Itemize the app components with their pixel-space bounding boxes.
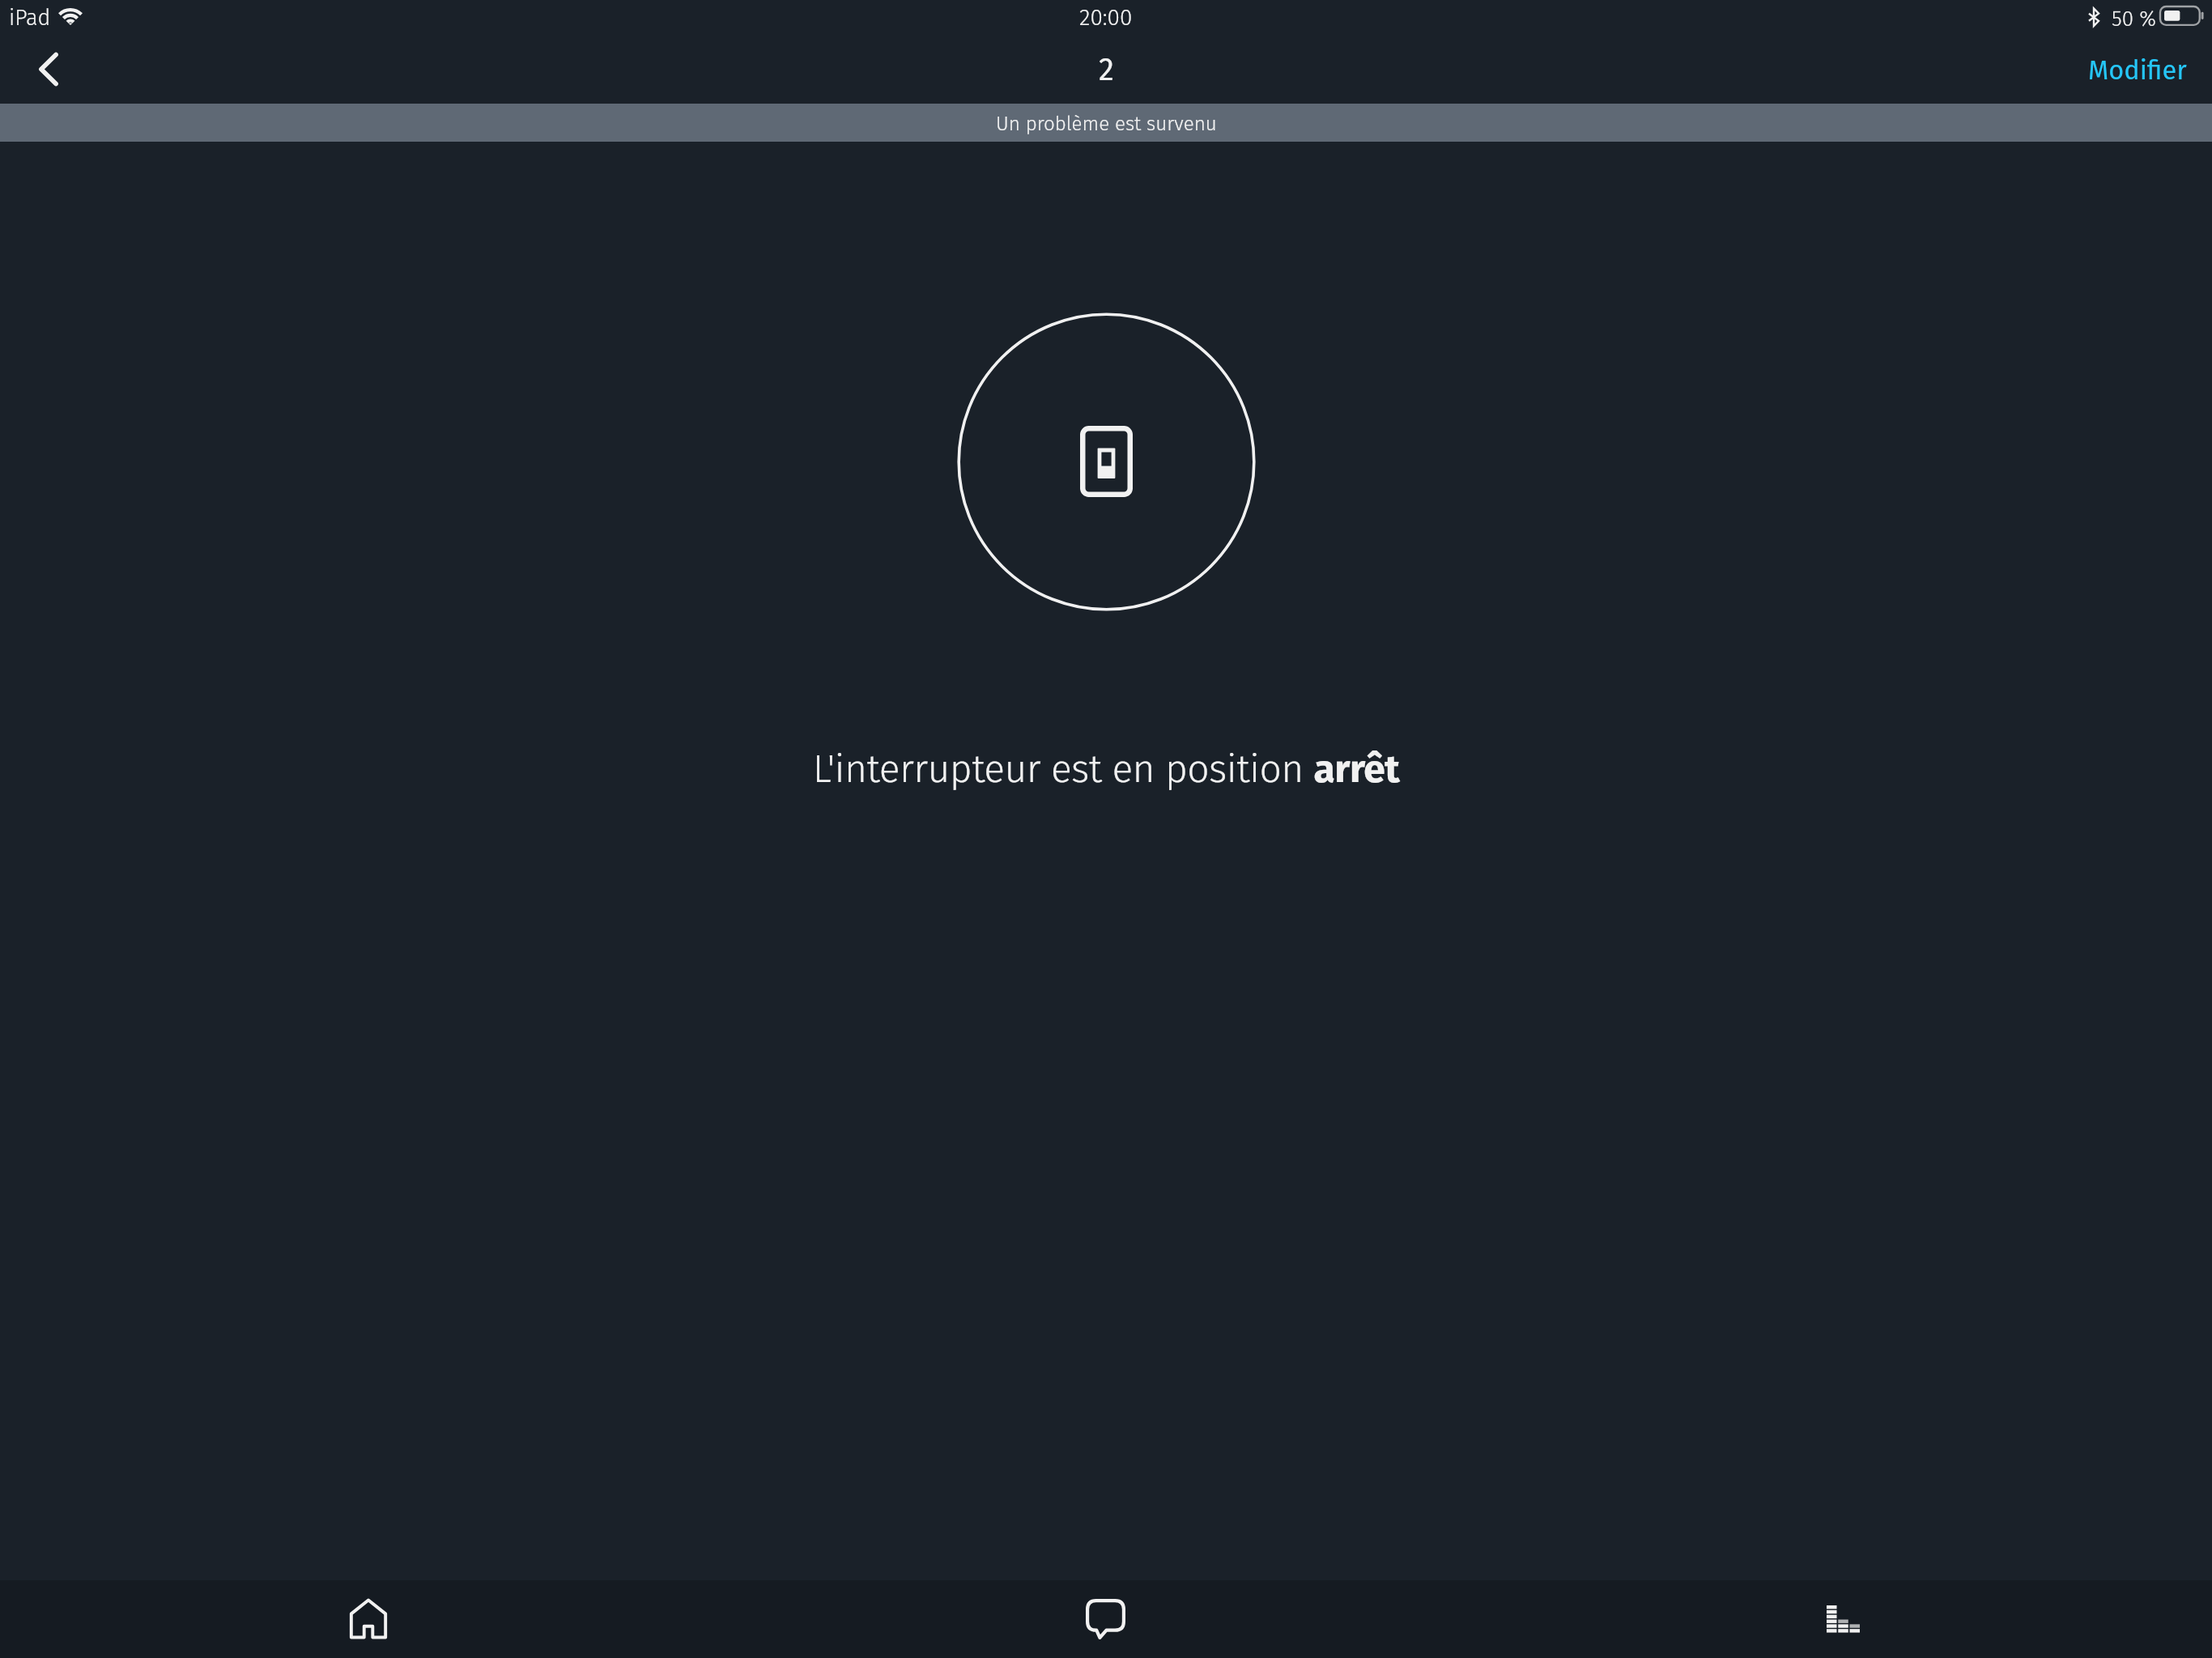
staticText: 50 % [2112,6,2156,32]
staticText: Un problème est survenu [996,112,1217,135]
staticText: L'interrupteur est en position arrêt [0,746,2212,793]
staticText: iPad [9,5,51,31]
staticText: 2 [1099,51,1114,88]
button[interactable]: Activité [1474,1580,2212,1658]
button[interactable]: Back [13,40,84,99]
staticText: Modifier [2088,55,2187,87]
staticText: 20:00 [1079,4,1133,32]
button[interactable]: Modifier [2065,49,2212,92]
button[interactable]: Conversations [737,1580,1474,1658]
button[interactable]: Accueil [0,1580,737,1658]
button[interactable]: Interrupteur [957,312,1256,611]
